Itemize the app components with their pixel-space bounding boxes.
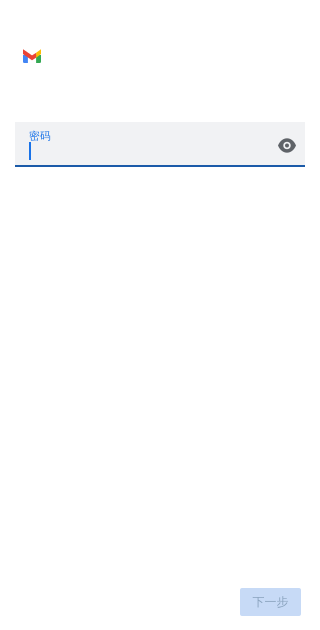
button[interactable]: 密码 [29, 122, 51, 165]
button[interactable]: 下一步 [240, 588, 301, 616]
staticText: 密码 [29, 129, 51, 142]
staticText: 下一步 [252, 595, 288, 609]
button[interactable]: 显示密码 [269, 122, 305, 165]
